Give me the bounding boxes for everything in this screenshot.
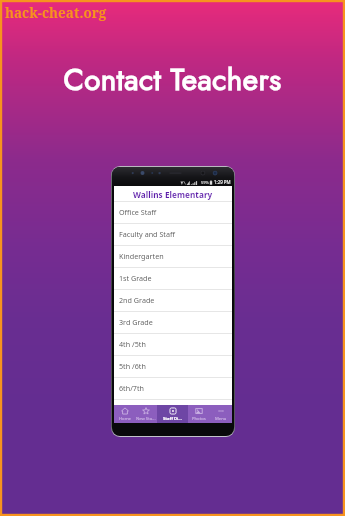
button[interactable]: Home xyxy=(114,405,135,423)
staticText: Staff Di... xyxy=(163,416,182,422)
staticText: 1:29 PM xyxy=(214,179,231,185)
staticText: Office Staff xyxy=(119,207,157,217)
staticText: 59% xyxy=(201,180,209,185)
button[interactable]: Staff Di... xyxy=(157,405,188,423)
staticText: Faculty and Staff xyxy=(119,229,175,239)
button[interactable]: 6th/7th xyxy=(114,378,232,400)
staticText: 5th /6th xyxy=(119,361,146,371)
staticText: hack-cheat.org xyxy=(5,4,107,22)
button[interactable]: 3rd Grade xyxy=(114,312,232,334)
button[interactable]: Office Staff xyxy=(114,202,232,224)
staticText: Kindergarten xyxy=(119,251,164,261)
staticText: Menu xyxy=(215,416,227,422)
staticText: Photos xyxy=(192,416,206,422)
button[interactable]: Photos xyxy=(188,405,210,423)
button[interactable]: 5th /6th xyxy=(114,356,232,378)
staticText: Wallins Elementary xyxy=(133,189,213,200)
staticText: Home xyxy=(119,416,131,422)
staticText: 2nd Grade xyxy=(119,295,155,305)
button[interactable]: New Stu... xyxy=(135,405,157,423)
staticText: 4th /5th xyxy=(119,339,146,349)
button[interactable]: Kindergarten xyxy=(114,246,232,268)
staticText: 1st Grade xyxy=(119,273,152,283)
staticText: New Stu... xyxy=(136,416,156,422)
staticText: 3rd Grade xyxy=(119,317,153,327)
button[interactable]: Menu xyxy=(210,405,232,423)
staticText: Contact Teachers xyxy=(63,58,282,101)
staticText: 6th/7th xyxy=(119,383,144,393)
button[interactable]: 1st Grade xyxy=(114,268,232,290)
button[interactable]: Faculty and Staff xyxy=(114,224,232,246)
button[interactable]: 2nd Grade xyxy=(114,290,232,312)
button[interactable]: 4th /5th xyxy=(114,334,232,356)
